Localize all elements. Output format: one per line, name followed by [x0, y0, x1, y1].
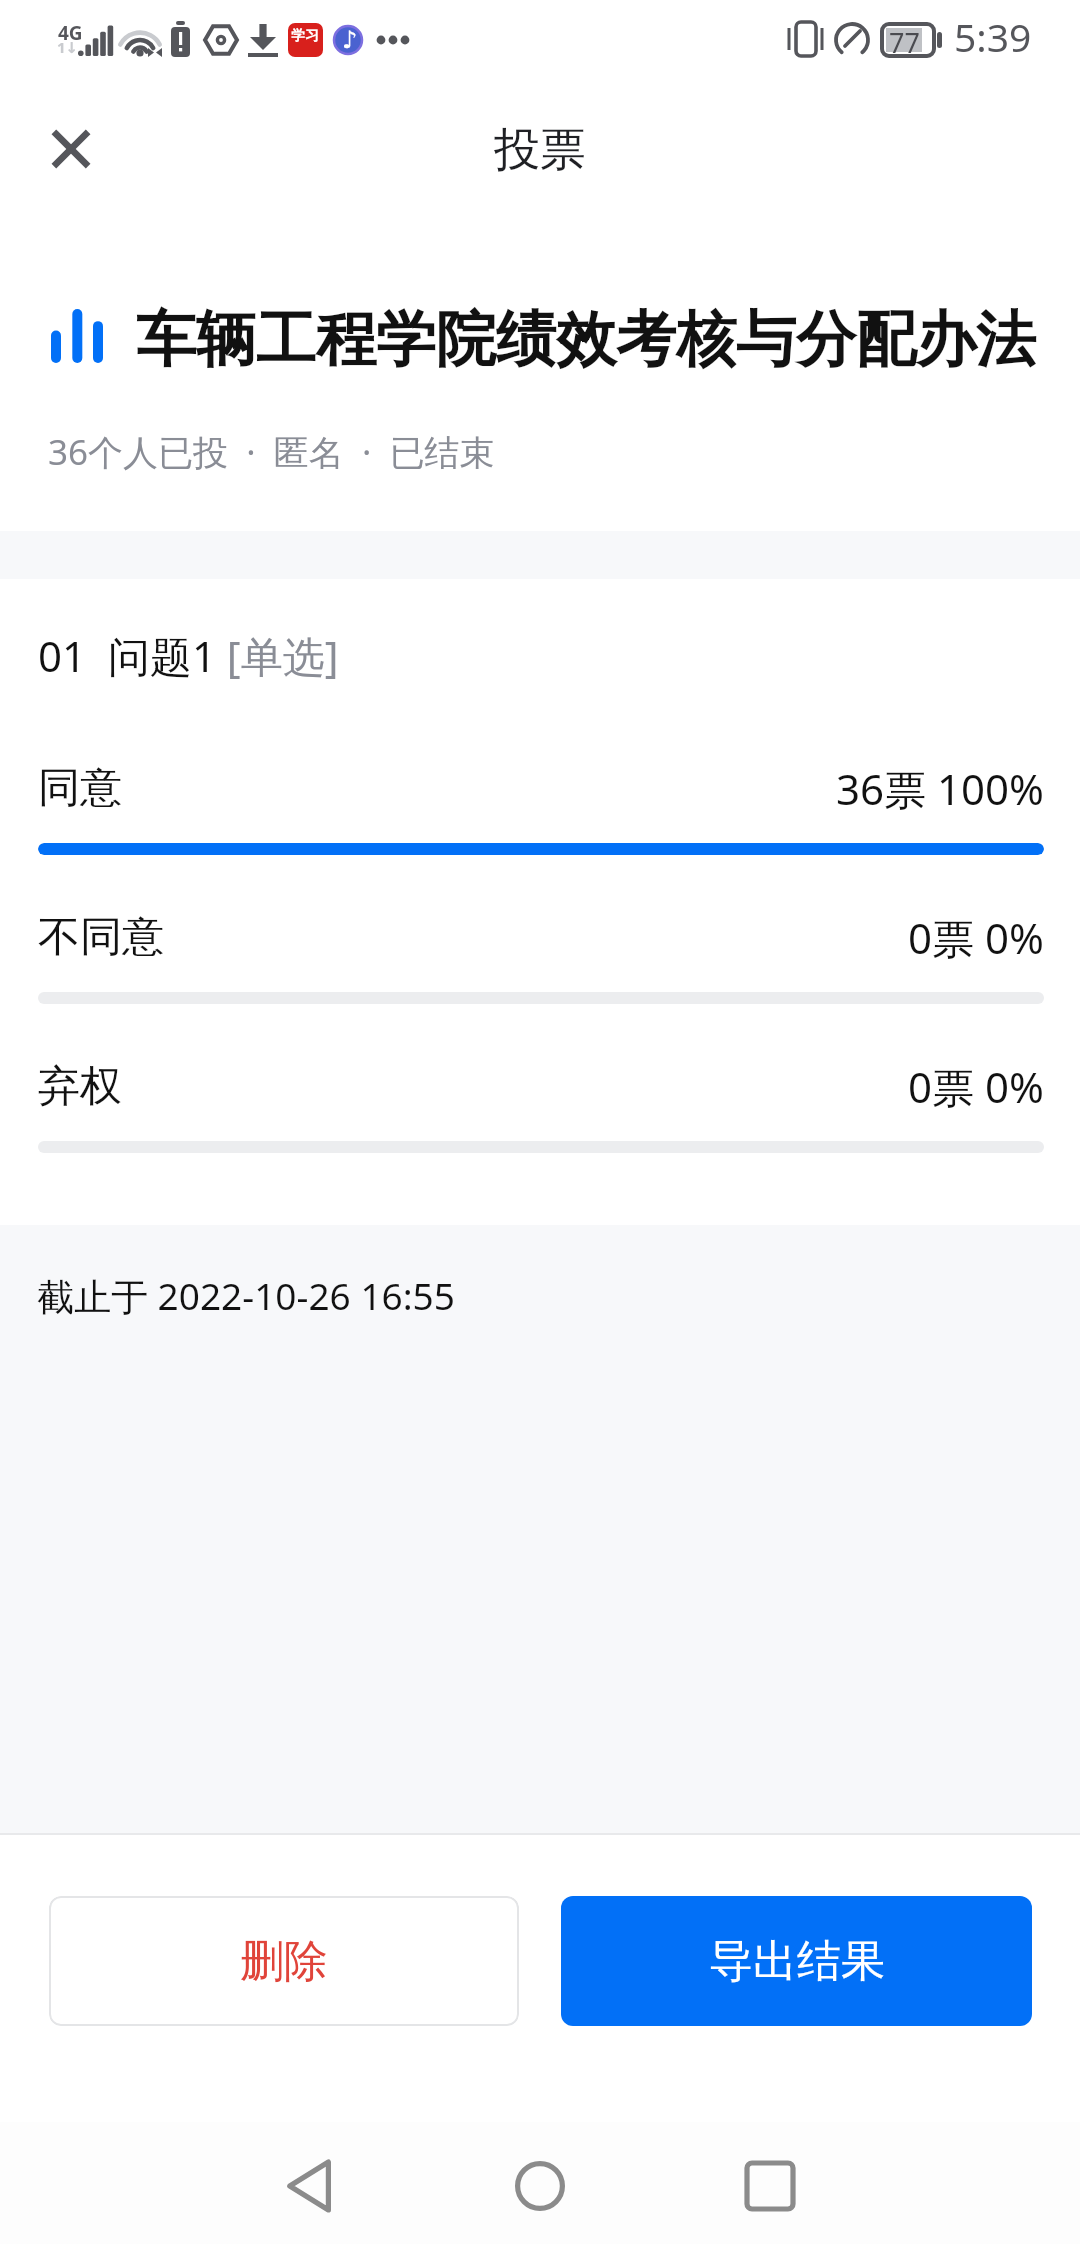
button[interactable]: 同意 [38, 760, 1044, 855]
staticText: 77 [889, 24, 920, 61]
staticText: 0票 0% [908, 1058, 1044, 1115]
staticText: 同意 [38, 762, 122, 815]
button[interactable]: Recents [655, 2122, 885, 2244]
staticText: 车辆工程学院绩效考核与分配办法 [136, 302, 1036, 378]
staticText: 不同意 [38, 911, 164, 964]
button[interactable]: Close [28, 107, 114, 193]
staticText: 弃权 [38, 1060, 122, 1113]
button[interactable]: Back [195, 2122, 425, 2244]
staticText: 删除 [240, 1934, 328, 1989]
button[interactable]: 导出结果 [561, 1896, 1032, 2026]
staticText: 0票 0% [908, 909, 1044, 966]
staticText: 5:39 [954, 10, 1032, 63]
button[interactable]: 弃权 [38, 1058, 1044, 1153]
staticText: 学习 [291, 27, 319, 45]
staticText: 导出结果 [709, 1934, 885, 1989]
staticText: 截止于 2022-10-26 16:55 [37, 1270, 455, 1321]
staticText: 01 问题1 [单选] [38, 627, 339, 684]
staticText: 4G [58, 20, 83, 46]
button[interactable]: 不同意 [38, 909, 1044, 1004]
staticText: ♪ [342, 26, 358, 54]
staticText: 36个人已投 · 匿名 · 已结束 [48, 428, 495, 476]
staticText: 投票 [494, 121, 586, 179]
staticText: 36票 100% [836, 760, 1044, 817]
button[interactable]: 删除 [49, 1896, 519, 2026]
button[interactable]: Home [425, 2122, 655, 2244]
staticText: 1↓ [57, 37, 79, 57]
